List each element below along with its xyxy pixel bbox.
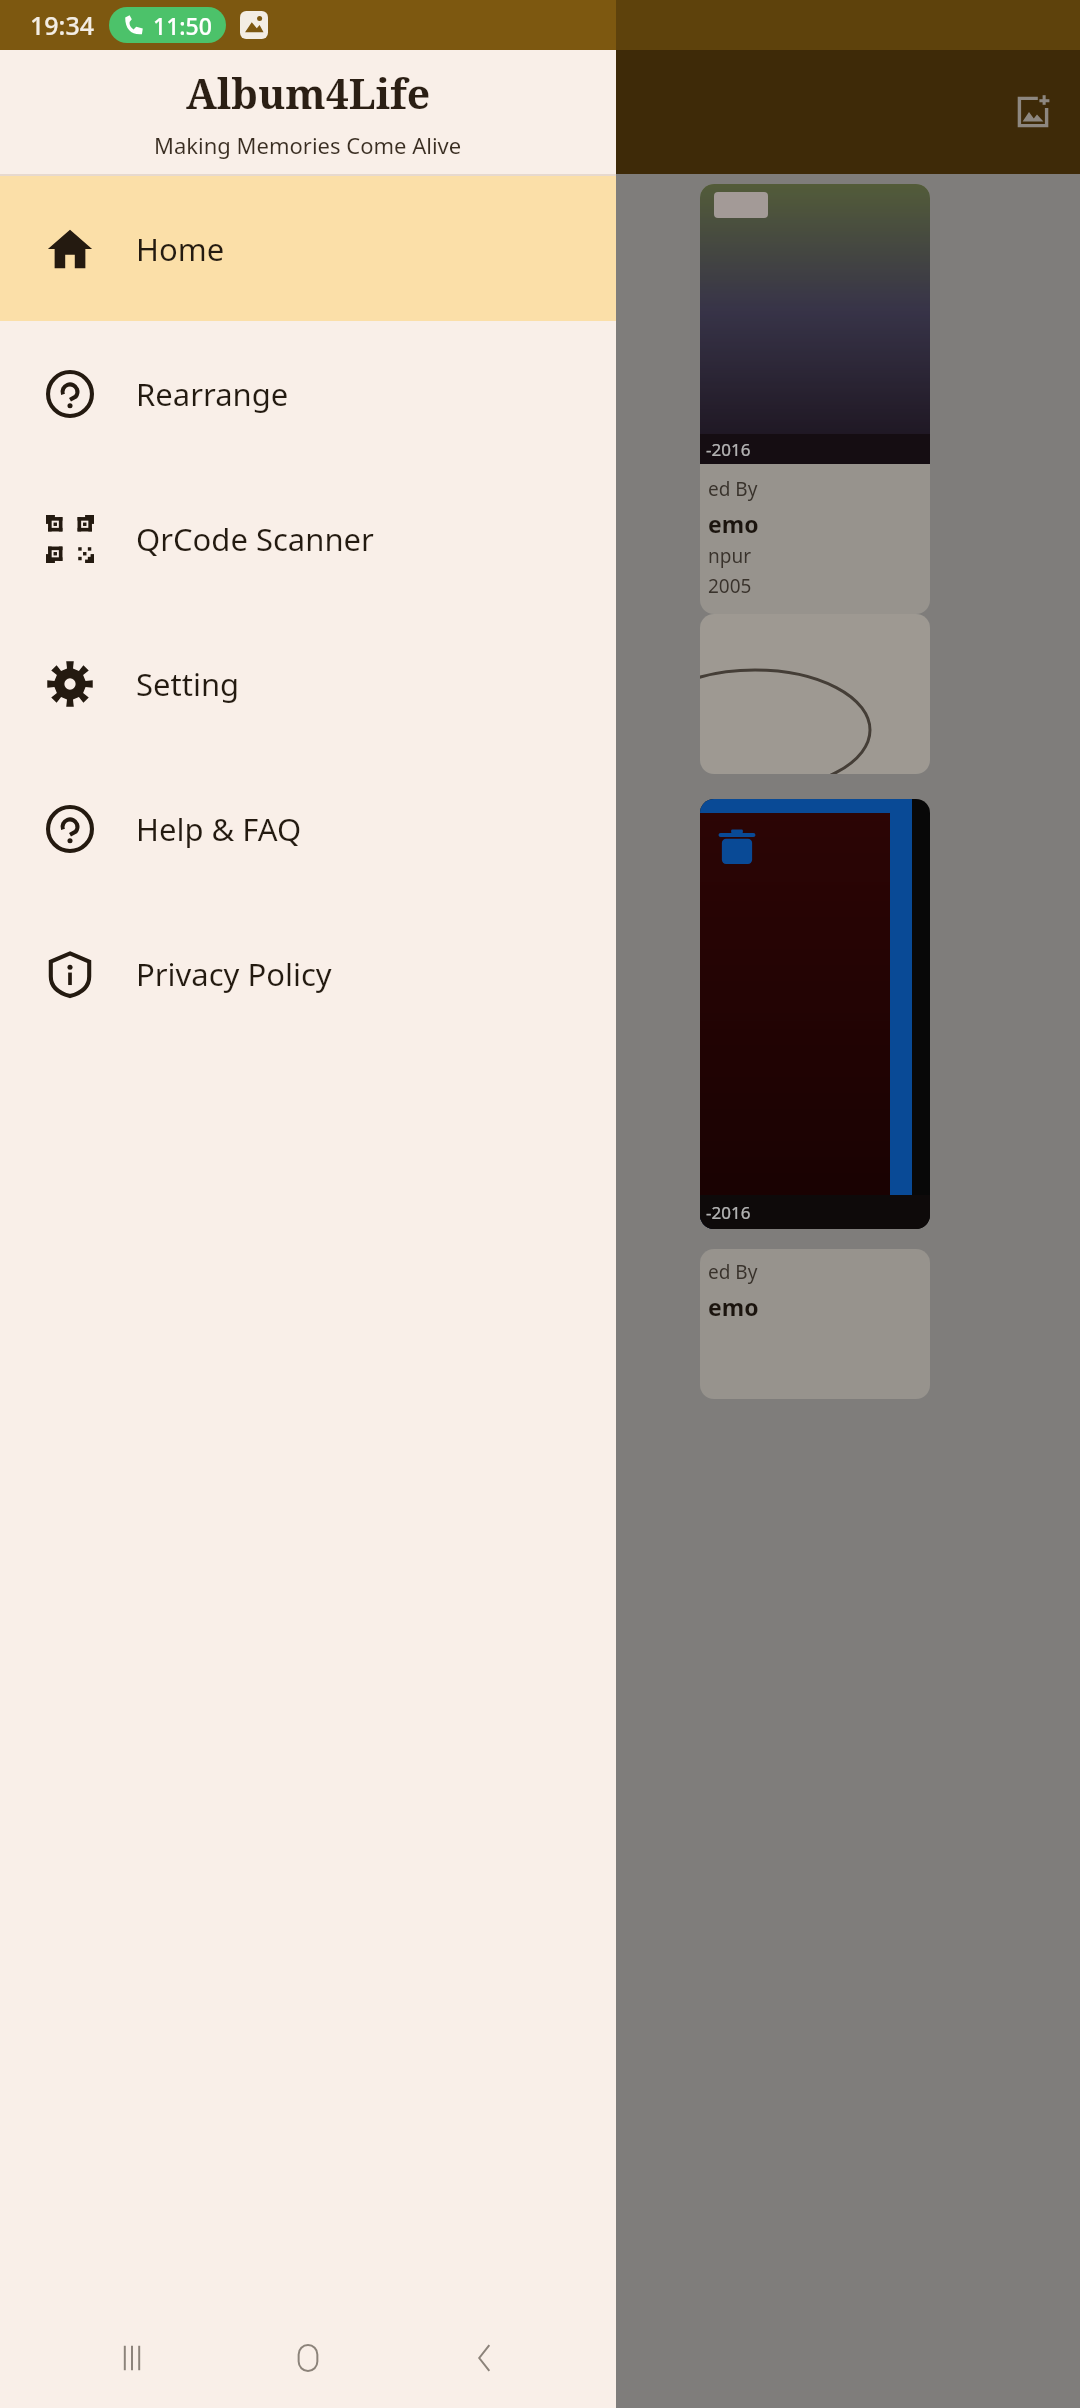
staticText: Help & FAQ — [136, 808, 302, 850]
staticText: QrCode Scanner — [136, 518, 374, 560]
staticText: Privacy Policy — [136, 953, 332, 995]
staticText: ed By — [708, 476, 758, 502]
staticText: Home — [136, 228, 225, 270]
staticText: 19:34 — [30, 8, 95, 42]
button[interactable]: Home — [263, 2313, 353, 2403]
button[interactable]: Privacy Policy — [0, 901, 616, 1046]
staticText: 2005 — [708, 573, 752, 599]
staticText: Album4Life — [186, 65, 431, 121]
staticText: Making Memories Come Alive — [154, 130, 462, 160]
button[interactable]: QrCode Scanner — [0, 466, 616, 611]
staticText: emo — [708, 508, 759, 539]
staticText: npur — [708, 543, 752, 569]
staticText: -2016 — [706, 1201, 751, 1224]
button[interactable]: Rearrange — [0, 321, 616, 466]
staticText: 11:50 — [153, 10, 212, 41]
button[interactable]: -2016 — [700, 799, 930, 1229]
button[interactable]: -2016 — [700, 184, 930, 614]
staticText: Setting — [136, 663, 240, 705]
button[interactable]: Setting — [0, 611, 616, 756]
button[interactable]: Help & FAQ — [0, 756, 616, 901]
button[interactable]: ed By — [700, 1249, 930, 1399]
button[interactable]: Home — [0, 176, 616, 321]
button[interactable]: Add photo — [1004, 83, 1062, 141]
staticText: -2016 — [706, 438, 751, 461]
button[interactable]: Recents — [87, 2313, 177, 2403]
staticText: Rearrange — [136, 373, 289, 415]
staticText: emo — [708, 1291, 759, 1322]
button[interactable] — [700, 614, 930, 774]
button[interactable]: Back — [440, 2313, 530, 2403]
staticText: ed By — [708, 1259, 758, 1285]
